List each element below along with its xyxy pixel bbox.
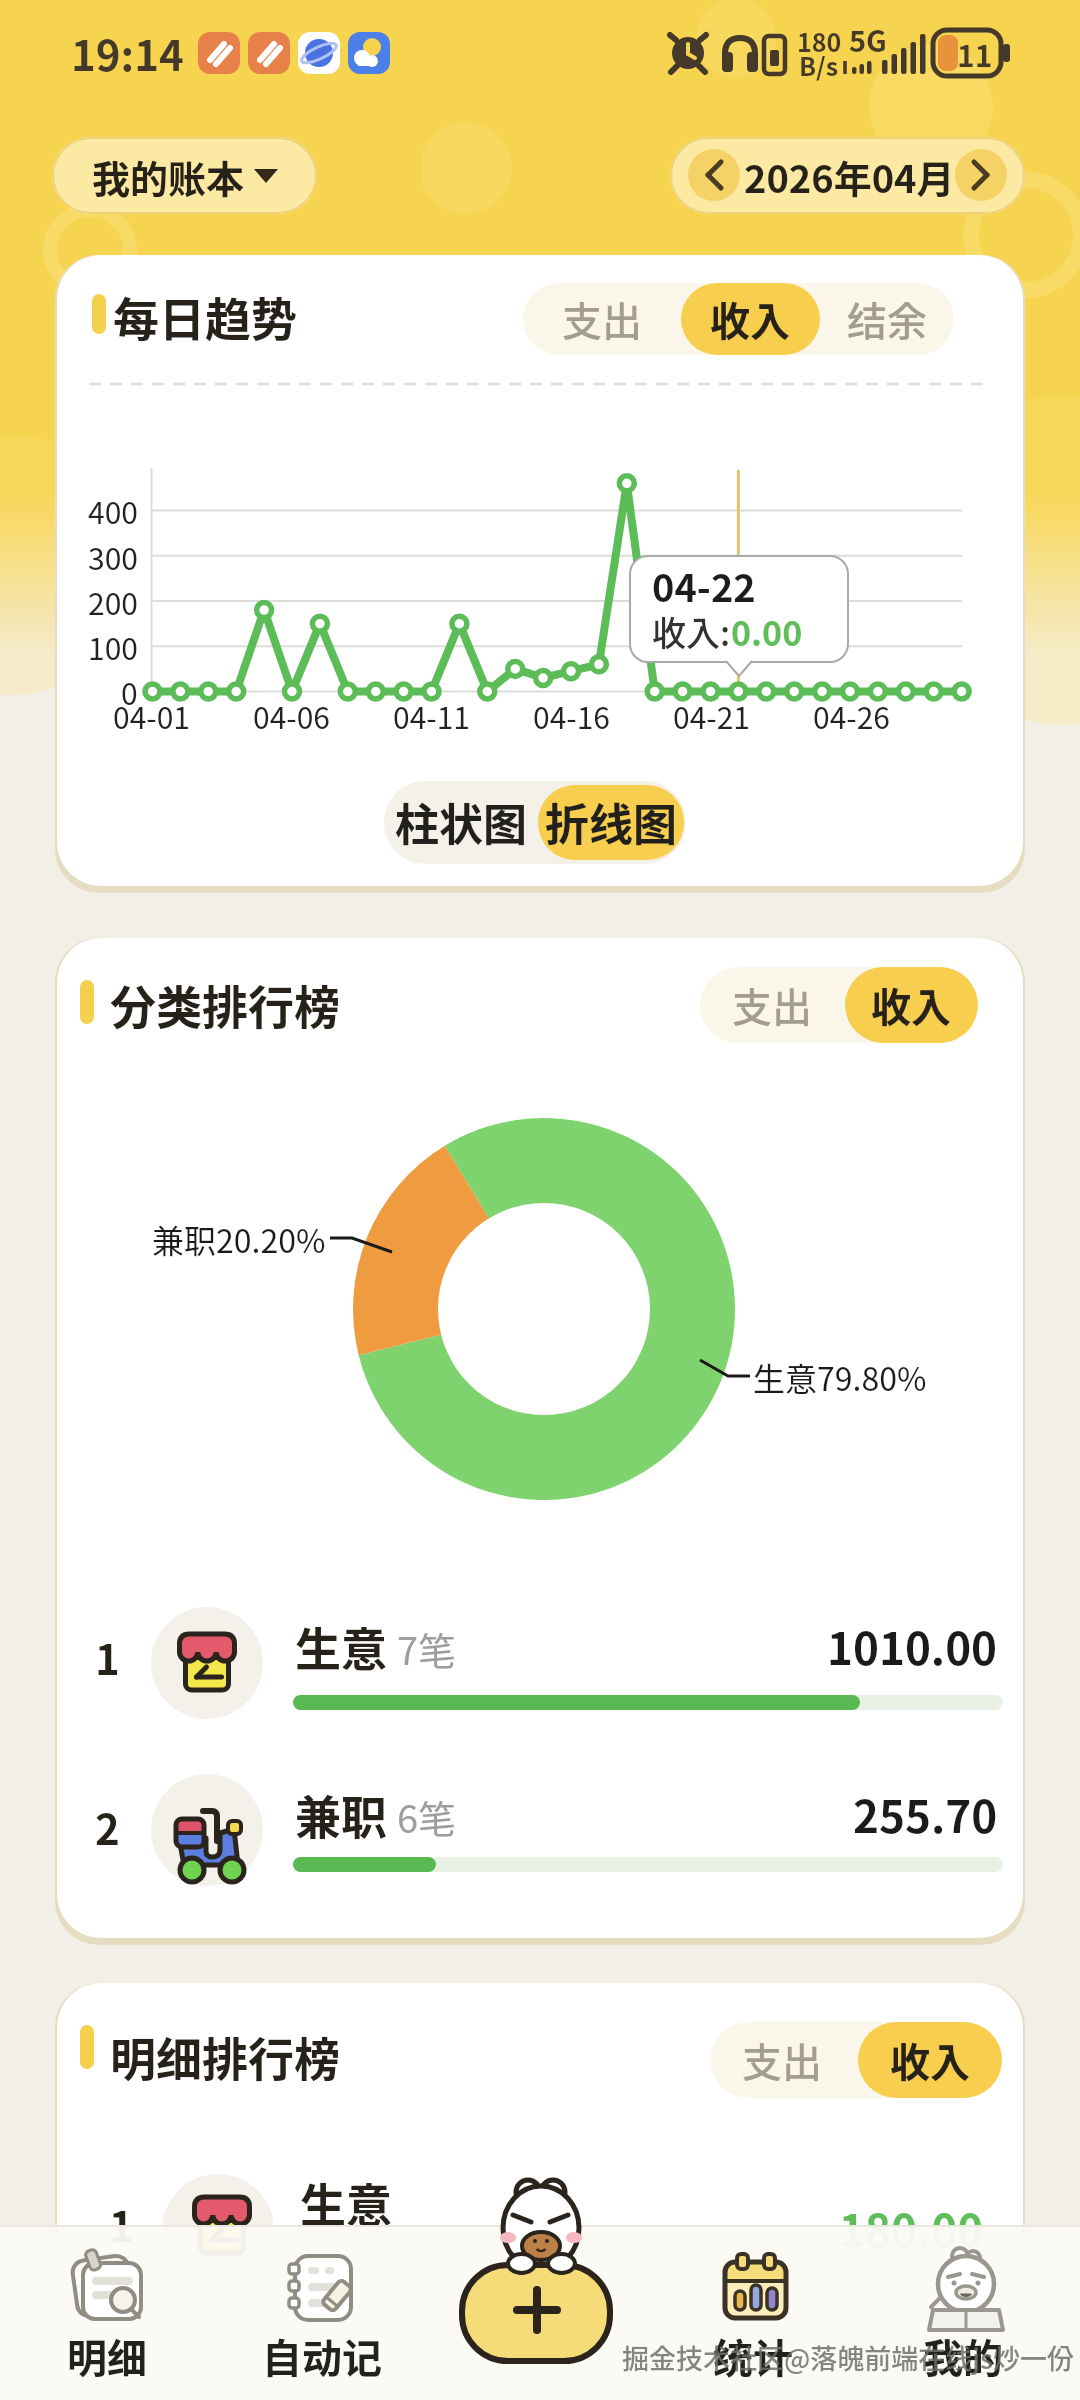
staticText: 6笔 [397,1789,457,1844]
staticText: 支出 [742,2031,822,2089]
staticText: 19:14 [71,22,184,83]
button[interactable] [52,137,317,214]
staticText: 生意 [300,2169,392,2236]
staticText: 统计 [713,2327,793,2385]
staticText: 掘金技术社区@落魄前端在线js炒一份 [622,2338,1075,2377]
button[interactable] [80,2160,1005,2270]
staticText: 我的账本 [92,149,245,204]
staticText: 7笔 [397,1621,457,1676]
staticText: 11 [957,32,993,75]
staticText: 折线图 [545,790,677,854]
button[interactable] [80,1600,1005,1725]
button[interactable] [712,2022,852,2098]
button[interactable] [681,283,820,355]
staticText: 收入 [710,290,790,348]
button[interactable] [955,149,1007,201]
staticText: 生意79.80% [753,1354,927,1400]
staticText: 收入 [871,976,951,1034]
button[interactable] [903,2240,1023,2390]
staticText: 0 [121,670,138,713]
button[interactable] [702,967,842,1043]
staticText: 04-11 [393,694,471,737]
staticText: 明细排行榜 [110,2023,340,2090]
button[interactable] [820,283,954,355]
staticText: 04-16 [533,694,611,737]
staticText: 04-06 [253,694,331,737]
button[interactable] [841,967,981,1043]
button[interactable] [47,2240,167,2390]
staticText: 结余 [847,290,927,348]
staticText: 每日趋势 [113,283,297,350]
staticText: 180.00 [839,2196,984,2260]
staticText: 0.00 [731,607,803,656]
staticText: 我的 [923,2327,1003,2385]
staticText: 分类排行榜 [110,971,340,1038]
staticText: 明细 [67,2327,147,2385]
staticText: 04-22 [652,558,756,613]
staticText: 5G [849,18,887,60]
staticText: 收入 [890,2031,970,2089]
staticText: 1 [109,2193,134,2254]
button[interactable] [860,2022,1000,2098]
button[interactable] [384,781,538,864]
button[interactable] [80,1768,1005,1893]
staticText: 2 [95,1796,120,1857]
staticText: 收入: [652,607,731,656]
staticText: 1 [95,1626,120,1687]
button[interactable] [693,2240,813,2390]
button[interactable] [538,785,684,860]
staticText: 04-26 [813,694,891,737]
staticText: 生意 [295,1613,387,1680]
staticText: 1010.00 [827,1614,998,1678]
staticText: 兼职20.20% [152,1216,326,1262]
staticText: B/s [799,47,839,83]
staticText: 400 [88,489,138,532]
staticText: 04-01 [113,694,191,737]
staticText: 支出 [562,290,642,348]
staticText: 200 [88,580,138,623]
staticText: 255.70 [853,1782,998,1846]
staticText: 2026年04月 [744,149,955,204]
staticText: 柱状图 [395,790,527,854]
staticText: 兼职 [295,1781,387,1848]
staticText: 04-21 [673,694,751,737]
button[interactable] [455,2185,625,2370]
button[interactable] [523,283,681,355]
staticText: 180 [797,23,842,59]
button[interactable] [688,149,740,201]
staticText: 自动记 [262,2327,382,2385]
button[interactable] [262,2240,382,2390]
staticText: 300 [88,535,138,578]
staticText: 支出 [732,976,812,1034]
staticText: 100 [88,625,138,668]
